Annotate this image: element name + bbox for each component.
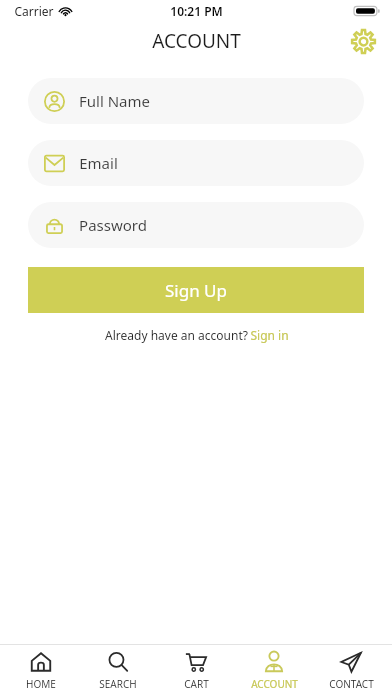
- button[interactable]: SEARCH: [81, 647, 155, 695]
- button[interactable]: CART: [159, 647, 233, 695]
- staticText: 10:21 PM: [170, 3, 223, 19]
- staticText: Carrier: [14, 3, 54, 19]
- staticText: ACCOUNT: [251, 677, 298, 691]
- staticText: Sign Up: [165, 279, 227, 302]
- staticText: SEARCH: [99, 677, 137, 691]
- button[interactable]: Full Name: [28, 78, 364, 124]
- button[interactable]: ACCOUNT: [237, 647, 311, 695]
- staticText: Password: [79, 215, 147, 235]
- button[interactable]: CONTACT: [314, 647, 388, 695]
- staticText: CART: [184, 677, 209, 691]
- staticText: Already have an account?: [103, 327, 250, 343]
- button[interactable]: Settings: [346, 24, 380, 58]
- staticText: CONTACT: [329, 677, 374, 691]
- button[interactable]: Password: [28, 202, 364, 248]
- staticText: ACCOUNT: [152, 28, 241, 54]
- button[interactable]: Email: [28, 140, 364, 186]
- staticText: Email: [79, 153, 118, 173]
- staticText: Sign in: [250, 327, 289, 343]
- staticText: HOME: [26, 677, 56, 691]
- button[interactable]: HOME: [4, 647, 78, 695]
- staticText: Full Name: [79, 91, 150, 111]
- button[interactable]: Sign Up: [28, 267, 364, 313]
- button[interactable]: Sign in: [250, 327, 289, 343]
